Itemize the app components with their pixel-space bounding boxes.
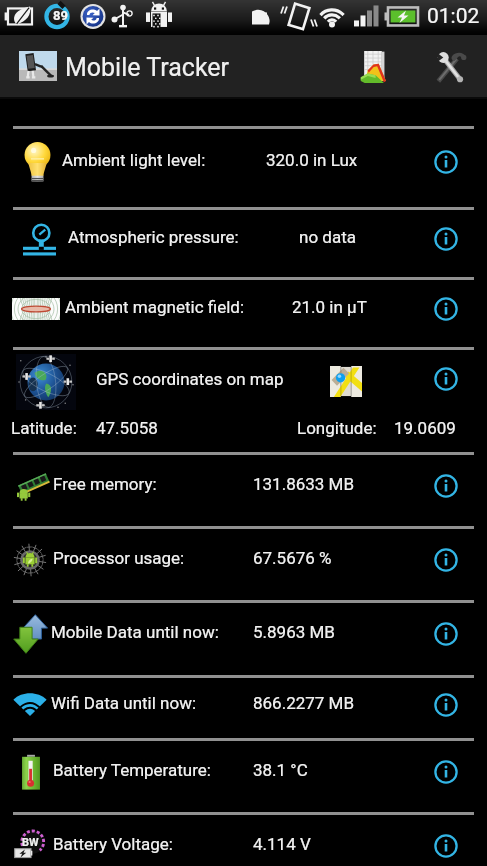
button[interactable]: Statistics bbox=[348, 35, 398, 99]
button[interactable]: Info bbox=[428, 687, 464, 723]
staticText: 320.0 in Lux bbox=[266, 150, 358, 170]
staticText: Ambient magnetic field: bbox=[65, 297, 245, 317]
button[interactable]: Settings bbox=[421, 35, 477, 99]
button[interactable]: BW bbox=[0, 815, 487, 866]
button[interactable]: Mobile Data until now: bbox=[0, 603, 487, 675]
button[interactable]: Ambient magnetic field: bbox=[0, 280, 487, 347]
staticText: Atmospheric pressure: bbox=[68, 227, 239, 247]
staticText: Longitude: bbox=[297, 418, 377, 438]
staticText: Processor usage: bbox=[53, 548, 185, 568]
staticText: 5.8963 MB bbox=[253, 622, 335, 642]
staticText: Latitude: bbox=[11, 418, 77, 438]
button[interactable]: Wifi Data until now: bbox=[0, 678, 487, 738]
button[interactable]: Info bbox=[428, 468, 464, 504]
staticText: Mobile Data until now: bbox=[51, 622, 219, 642]
staticText: Wifi Data until now: bbox=[51, 693, 197, 713]
staticText: 47.5058 bbox=[96, 418, 158, 438]
button[interactable]: Processor usage: bbox=[0, 529, 487, 600]
staticText: Battery Voltage: bbox=[53, 834, 173, 854]
button[interactable]: Free memory: bbox=[0, 455, 487, 526]
staticText: 4.114 V bbox=[253, 834, 311, 854]
staticText: 67.5676 % bbox=[253, 548, 332, 568]
button[interactable]: Info bbox=[428, 542, 464, 578]
button[interactable]: Info bbox=[428, 291, 464, 327]
button[interactable]: Info bbox=[428, 828, 464, 864]
button[interactable]: Battery Temperature: bbox=[0, 741, 487, 812]
button[interactable]: Info bbox=[428, 361, 464, 397]
staticText: Battery Temperature: bbox=[53, 760, 211, 780]
staticText: 131.8633 MB bbox=[253, 474, 355, 494]
staticText: 89 bbox=[53, 8, 68, 23]
button[interactable]: Info bbox=[428, 144, 464, 180]
button[interactable]: Info bbox=[428, 616, 464, 652]
staticText: 01:02 bbox=[427, 4, 480, 29]
staticText: Ambient light level: bbox=[62, 150, 206, 170]
button[interactable]: Atmospheric pressure: bbox=[0, 210, 487, 277]
staticText: Mobile Tracker bbox=[65, 53, 230, 82]
staticText: GPS coordinates on map bbox=[96, 369, 284, 389]
button[interactable]: Info bbox=[428, 221, 464, 257]
staticText: Free memory: bbox=[53, 474, 157, 494]
staticText: BW bbox=[22, 836, 39, 849]
staticText: 866.2277 MB bbox=[253, 693, 355, 713]
staticText: 19.0609 bbox=[394, 418, 456, 438]
button[interactable]: Ambient light level: bbox=[0, 129, 487, 207]
staticText: 21.0 in µT bbox=[292, 297, 367, 317]
staticText: 38.1 °C bbox=[253, 760, 308, 780]
button[interactable]: GPS coordinates on map bbox=[0, 350, 487, 452]
staticText: no data bbox=[299, 227, 356, 247]
button[interactable]: Info bbox=[428, 754, 464, 790]
